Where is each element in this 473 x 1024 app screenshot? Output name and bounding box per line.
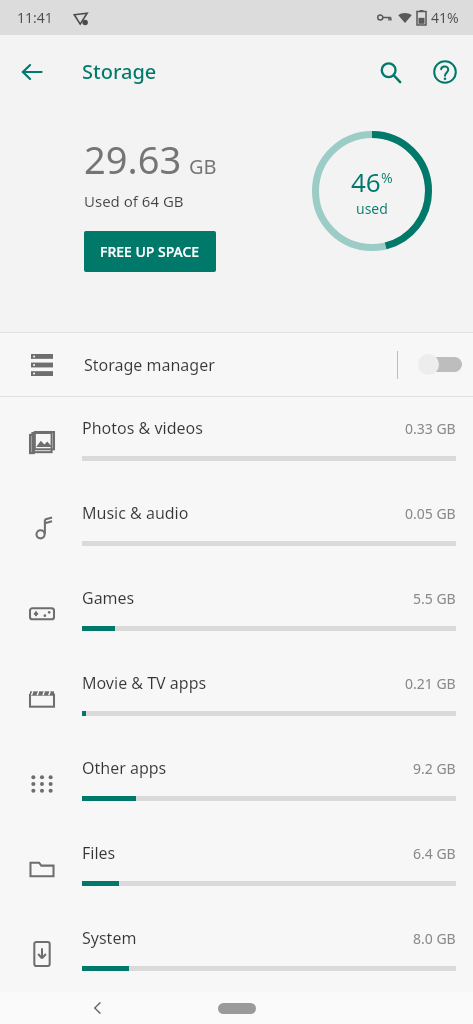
staticText: Storage bbox=[82, 58, 157, 85]
button[interactable]: Storage manager bbox=[0, 333, 473, 396]
staticText: Used of 64 GB bbox=[84, 191, 184, 211]
staticText: 29.63 bbox=[84, 133, 182, 185]
staticText: 5.5 GB bbox=[413, 589, 456, 608]
button[interactable]: Home bbox=[207, 992, 267, 1024]
button[interactable]: Back bbox=[8, 48, 56, 96]
button[interactable]: Movie & TV apps bbox=[0, 652, 473, 737]
staticText: 11:41 bbox=[17, 8, 53, 27]
staticText: System bbox=[82, 927, 137, 949]
button[interactable]: Files bbox=[0, 822, 473, 907]
staticText: 46 bbox=[351, 164, 381, 199]
staticText: 0.05 GB bbox=[405, 504, 456, 523]
staticText: 6.4 GB bbox=[413, 844, 456, 863]
button[interactable]: Photos & videos bbox=[0, 397, 473, 482]
staticText: 0.21 GB bbox=[405, 674, 456, 693]
staticText: % bbox=[381, 168, 393, 187]
staticText: GB bbox=[189, 153, 217, 180]
button[interactable]: Other apps bbox=[0, 737, 473, 822]
button[interactable]: Music & audio bbox=[0, 482, 473, 567]
staticText: Storage manager bbox=[84, 354, 215, 376]
staticText: 8.0 GB bbox=[413, 929, 456, 948]
staticText: FREE UP SPACE bbox=[100, 242, 200, 261]
staticText: 0.33 GB bbox=[405, 419, 456, 438]
button[interactable]: Search bbox=[366, 48, 414, 96]
staticText: Other apps bbox=[82, 757, 167, 779]
button[interactable]: Games bbox=[0, 567, 473, 652]
button[interactable]: Back bbox=[74, 992, 122, 1024]
button[interactable]: FREE UP SPACE bbox=[84, 231, 216, 272]
staticText: Music & audio bbox=[82, 502, 189, 524]
button[interactable]: Storage manager toggle bbox=[398, 333, 473, 396]
staticText: 41% bbox=[431, 8, 459, 27]
button[interactable]: System bbox=[0, 907, 473, 992]
staticText: Photos & videos bbox=[82, 417, 203, 439]
staticText: Movie & TV apps bbox=[82, 672, 207, 694]
staticText: 9.2 GB bbox=[413, 759, 456, 778]
staticText: used bbox=[356, 199, 388, 218]
button[interactable]: Help bbox=[421, 48, 469, 96]
staticText: Games bbox=[82, 587, 135, 609]
staticText: Files bbox=[82, 842, 116, 864]
